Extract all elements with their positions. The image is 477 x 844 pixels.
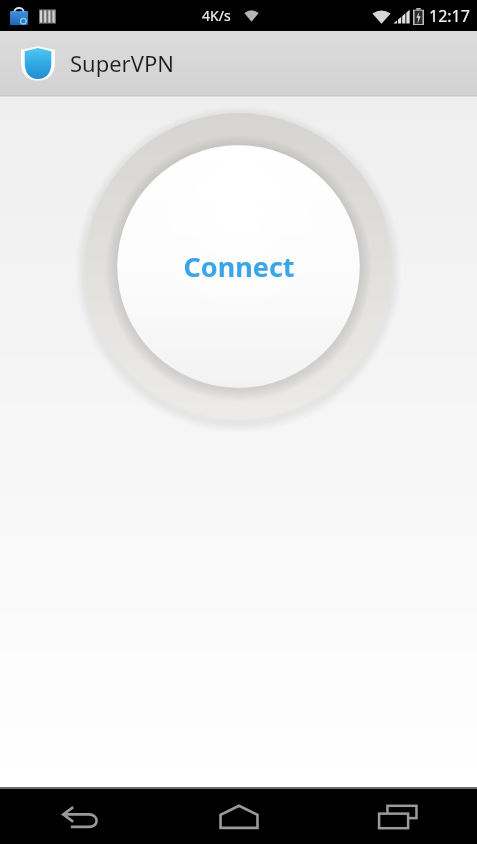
button[interactable]: Recent apps bbox=[318, 789, 477, 844]
button[interactable]: Back bbox=[0, 789, 159, 844]
button[interactable]: Home bbox=[159, 789, 318, 844]
staticText: SuperVPN bbox=[70, 48, 174, 78]
staticText: 12:17 bbox=[429, 5, 470, 27]
staticText: 4K/s bbox=[202, 6, 231, 25]
button[interactable]: Connect bbox=[82, 110, 395, 423]
staticText: Connect bbox=[183, 248, 295, 285]
